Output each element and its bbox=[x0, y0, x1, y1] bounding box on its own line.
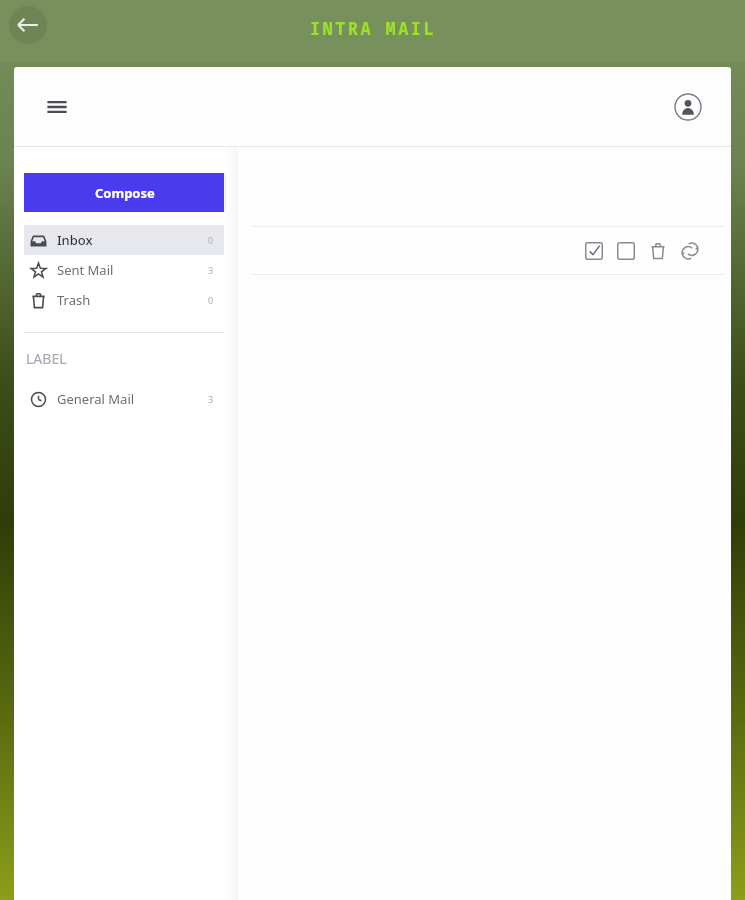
button[interactable]: Compose bbox=[24, 173, 226, 212]
button[interactable]: Account bbox=[667, 86, 709, 128]
staticText: Sent Mail bbox=[57, 261, 114, 279]
staticText: 3 bbox=[208, 393, 214, 405]
staticText: LABEL bbox=[26, 349, 67, 368]
button[interactable]: Inbox bbox=[24, 225, 226, 255]
staticText: Inbox bbox=[57, 231, 93, 249]
staticText: INTRA MAIL bbox=[310, 17, 436, 40]
button[interactable]: Sent Mail bbox=[24, 255, 226, 285]
staticText: Trash bbox=[57, 291, 91, 309]
button[interactable]: Back bbox=[9, 6, 47, 44]
button[interactable]: Menu bbox=[36, 86, 78, 128]
button[interactable]: Refresh bbox=[674, 235, 706, 267]
staticText: General Mail bbox=[57, 390, 135, 408]
button[interactable]: Trash bbox=[24, 285, 226, 315]
button[interactable]: Select none bbox=[610, 235, 642, 267]
button[interactable]: Delete bbox=[642, 235, 674, 267]
staticText: 0 bbox=[208, 234, 214, 246]
staticText: 0 bbox=[208, 294, 214, 306]
staticText: 3 bbox=[208, 264, 214, 276]
button[interactable]: General Mail bbox=[24, 384, 226, 414]
staticText: Compose bbox=[95, 184, 155, 202]
button[interactable]: Select all bbox=[578, 235, 610, 267]
